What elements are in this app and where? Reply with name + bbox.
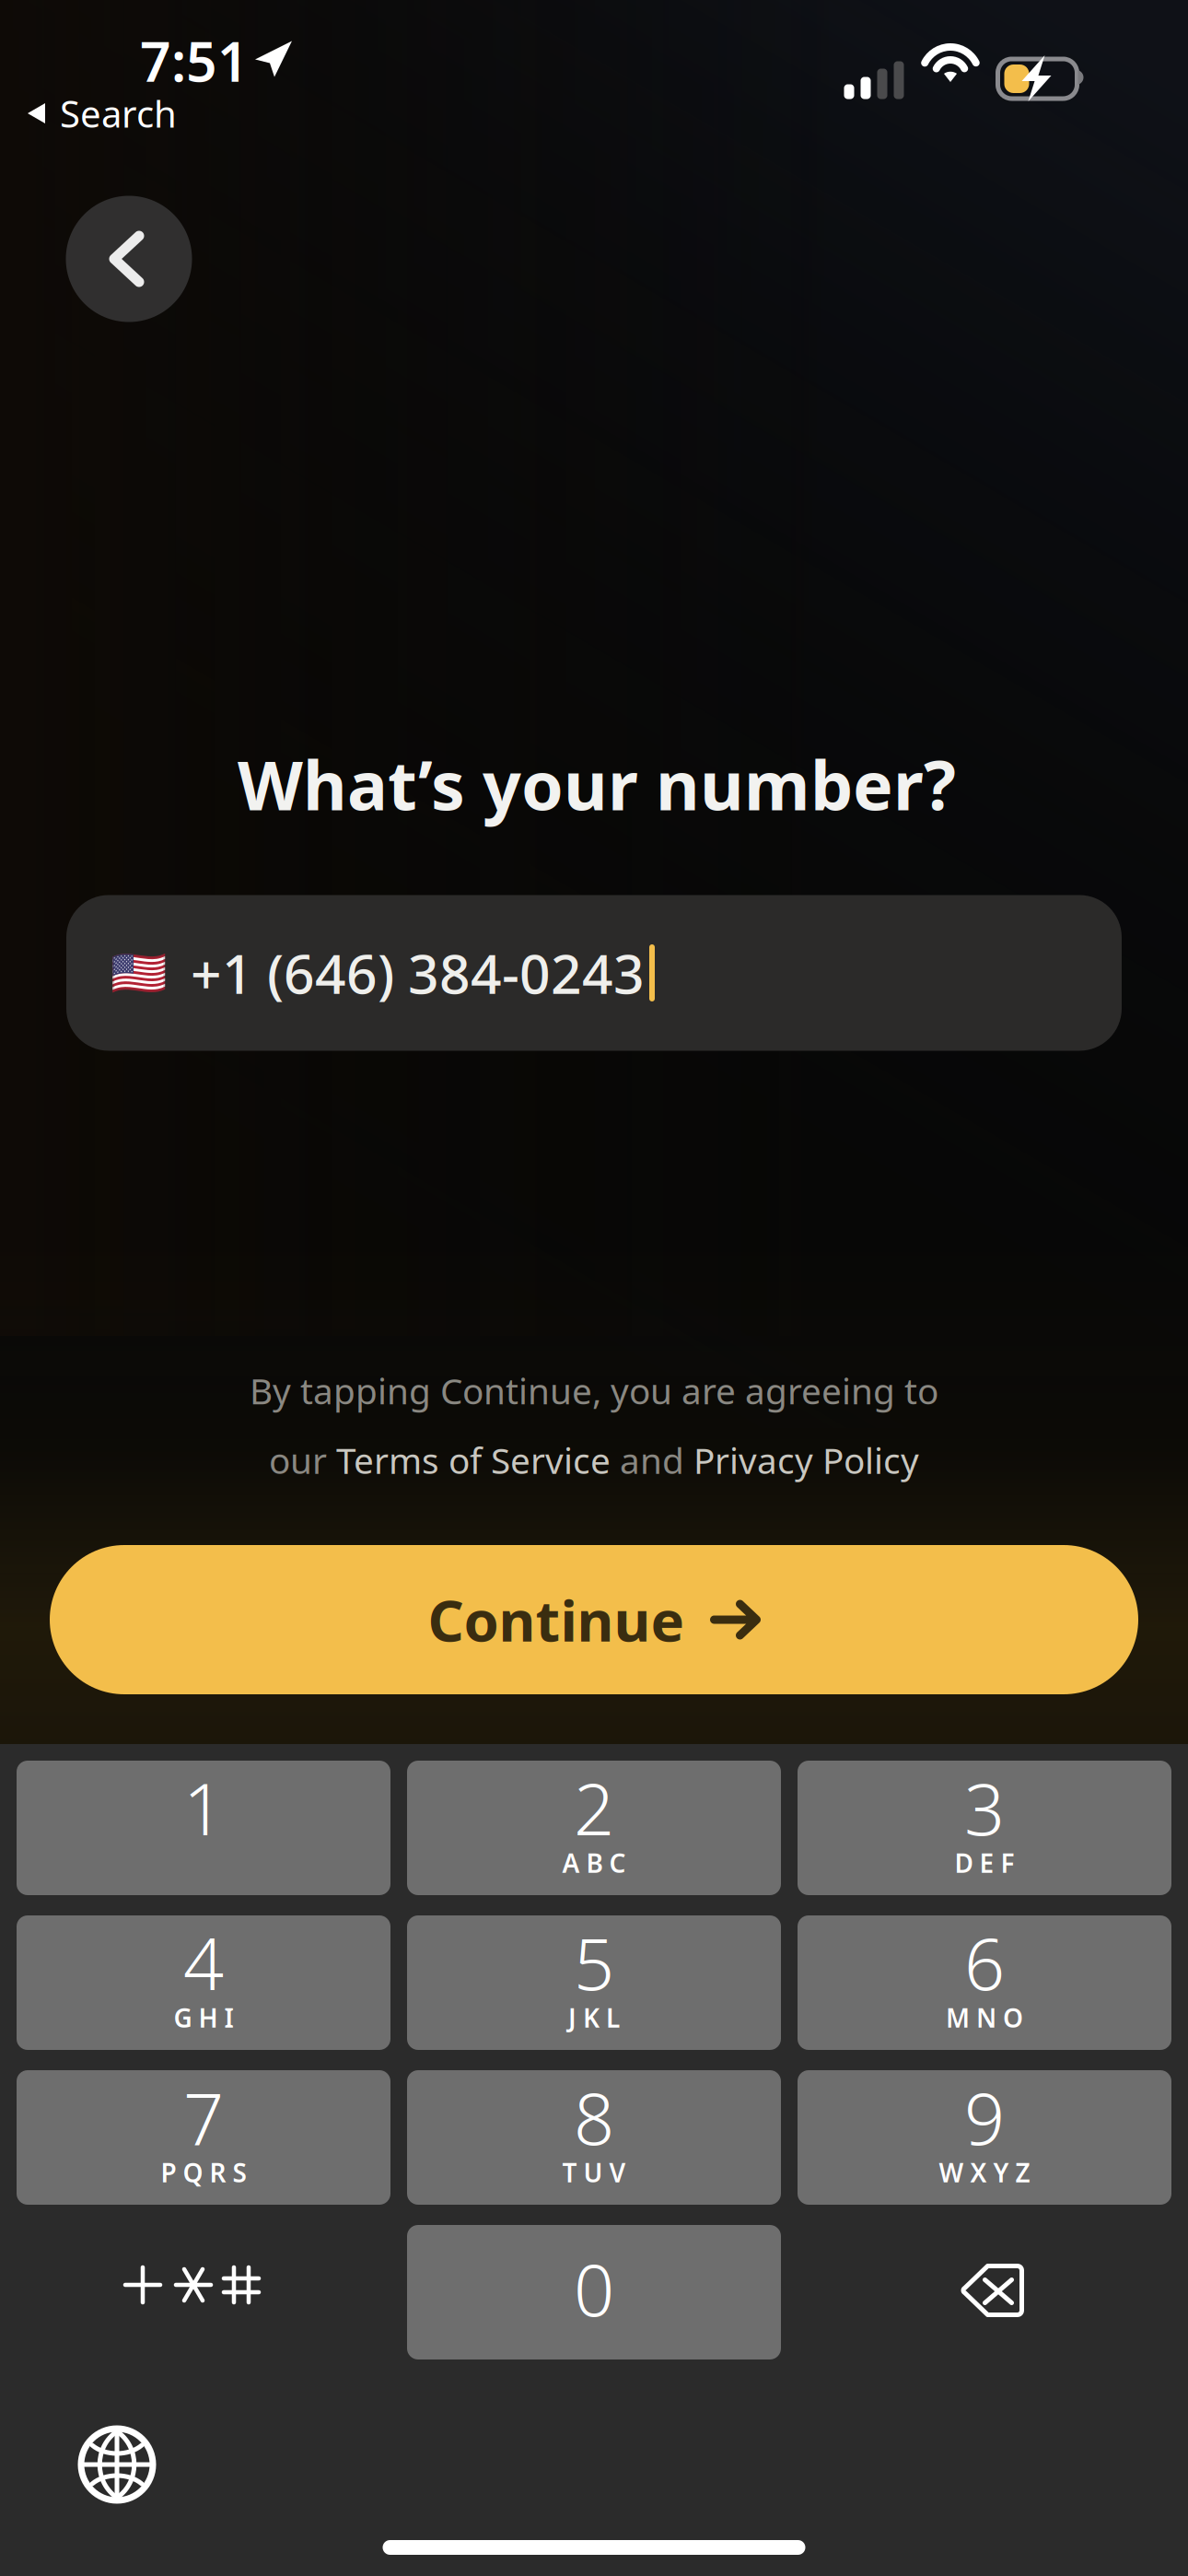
button[interactable]: Search [11,88,192,139]
staticText: our [269,1436,336,1484]
button[interactable]: Delete [798,2225,1171,2359]
staticText: MNO [946,2001,1023,2035]
staticText: 6 [964,1915,1005,2010]
staticText: JKL [568,2001,620,2035]
staticText: 8 [574,2070,614,2165]
button[interactable]: 2 [407,1761,781,1895]
button[interactable]: 3 [798,1761,1171,1895]
staticText: Terms of Service [336,1436,611,1484]
button[interactable]: 🇺🇸 [66,895,1122,1051]
staticText: Privacy Policy [693,1436,919,1484]
staticText: 1 [183,1760,224,1855]
button[interactable]: 9 [798,2070,1171,2205]
staticText: 7:51 [140,25,249,97]
button[interactable]: Change keyboard [62,2409,172,2520]
staticText: DEF [955,1846,1014,1880]
staticText: By tapping Continue, you are agreeing to [250,1367,938,1414]
staticText: 5 [574,1915,614,2010]
staticText: ABC [562,1846,626,1880]
staticText: What’s your number? [238,739,956,829]
staticText: PQRS [161,2155,246,2190]
staticText: GHI [174,2001,233,2035]
staticText: 3 [964,1760,1005,1855]
staticText: 🇺🇸 [111,947,167,999]
button[interactable]: Back [66,196,192,322]
button[interactable]: Continue [50,1545,1138,1694]
staticText: Continue [428,1582,685,1657]
button[interactable]: 8 [407,2070,781,2205]
button[interactable]: Plus star hash [17,2225,390,2359]
staticText: WXYZ [939,2155,1030,2190]
button[interactable]: Terms of Service [336,1436,611,1484]
staticText: 2 [574,1760,614,1855]
staticText: Search [60,89,177,138]
staticText: 4 [183,1915,224,2010]
staticText: 9 [964,2070,1005,2165]
button[interactable]: 5 [407,1915,781,2050]
button[interactable]: 4 [17,1915,390,2050]
button[interactable]: 1 [17,1761,390,1895]
staticText: +1 (646) 384-0243 [191,937,645,1009]
button[interactable]: 0 [407,2225,781,2359]
button[interactable]: 7 [17,2070,390,2205]
staticText: 0 [574,2241,614,2336]
staticText: TUV [562,2155,626,2190]
staticText: 7 [183,2070,224,2165]
button[interactable]: Privacy Policy [693,1436,919,1484]
button[interactable]: 6 [798,1915,1171,2050]
staticText: and [611,1436,693,1484]
